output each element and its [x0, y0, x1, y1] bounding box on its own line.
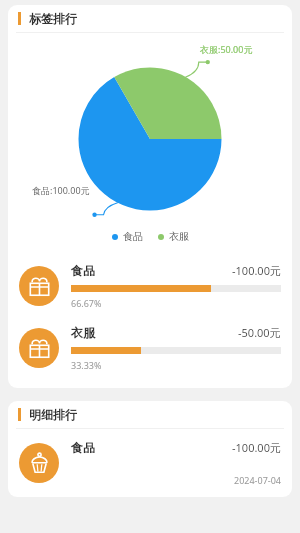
button[interactable]: 标签图标	[8, 255, 292, 317]
staticText: 食品:100.00元	[32, 184, 90, 196]
staticText: 33.33%	[71, 359, 102, 371]
staticText: -100.00元	[232, 263, 281, 278]
staticText: 衣服	[71, 325, 238, 340]
staticText: 衣服:50.00元	[200, 43, 253, 55]
staticText: -50.00元	[238, 325, 281, 340]
other: 食品图标	[19, 443, 59, 483]
staticText: 衣服	[169, 230, 189, 243]
other: 标签图标	[19, 266, 59, 306]
staticText: 标签排行	[29, 11, 77, 26]
button[interactable]: 标签图标	[8, 317, 292, 379]
staticText: 明细排行	[29, 407, 77, 422]
staticText: -100.00元	[232, 440, 281, 455]
staticText: 食品	[123, 230, 143, 243]
button[interactable]: 食品图标	[8, 429, 292, 497]
other: 标签图标	[19, 328, 59, 368]
staticText: 食品	[71, 440, 232, 455]
staticText: 2024-07-04	[234, 474, 281, 486]
staticText: 食品	[71, 263, 232, 278]
staticText: 66.67%	[71, 297, 102, 309]
